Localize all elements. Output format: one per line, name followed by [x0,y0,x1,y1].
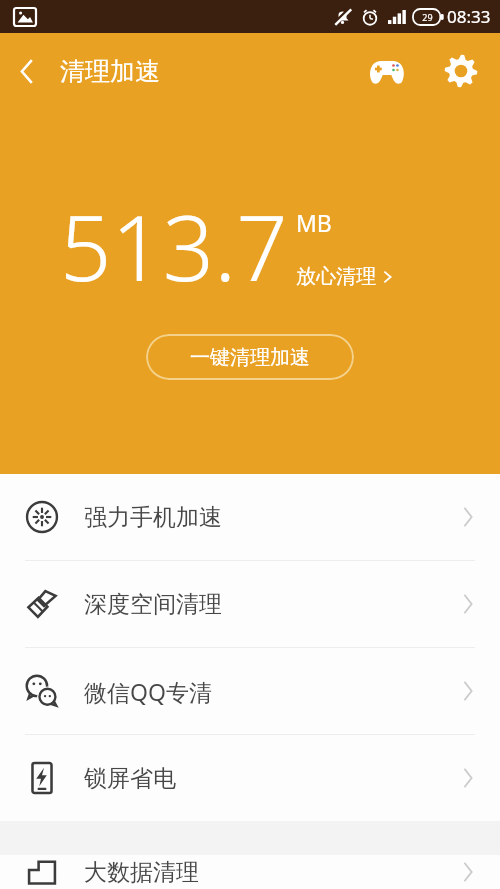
button[interactable]: 大数据清理 [0,855,500,889]
staticText: 大数据清理 [84,858,199,887]
staticText: MB [296,207,332,238]
staticText: 强力手机加速 [84,503,222,532]
staticText: 锁屏省电 [84,764,176,793]
staticText: 清理加速 [60,56,160,87]
staticText: 深度空间清理 [84,590,222,619]
staticText: 微信QQ专清 [84,676,212,707]
button[interactable]: 放心清理 [296,264,392,289]
staticText: 放心清理 [296,264,376,289]
button[interactable]: 深度空间清理 [0,561,500,647]
button[interactable]: Back [0,44,54,98]
staticText: 一键清理加速 [190,345,310,370]
button[interactable]: 微信QQ专清 [0,648,500,734]
button[interactable]: Settings [432,42,490,100]
button[interactable]: 锁屏省电 [0,735,500,821]
button[interactable]: 一键清理加速 [146,334,354,380]
staticText: 08:33 [447,5,491,28]
staticText: 29 [422,11,433,23]
button[interactable]: 强力手机加速 [0,474,500,560]
staticText: 513.7 [60,185,288,308]
button[interactable]: Games [358,42,416,100]
